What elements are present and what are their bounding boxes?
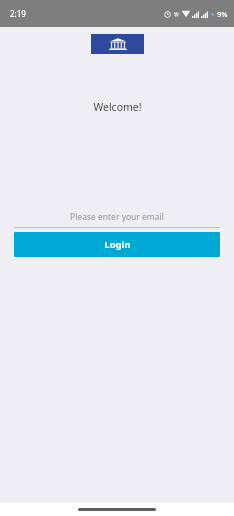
staticText: Welcome! bbox=[93, 100, 142, 114]
button[interactable]: App logo bbox=[91, 34, 144, 54]
staticText: Please enter your email bbox=[70, 211, 164, 223]
staticText: Login bbox=[104, 238, 131, 251]
staticText: 9% bbox=[217, 9, 228, 19]
button[interactable]: Login bbox=[14, 232, 220, 257]
other: Home gesture bar bbox=[78, 508, 156, 511]
button[interactable]: Please enter your email bbox=[14, 209, 220, 228]
staticText: 2:19 bbox=[10, 8, 26, 19]
